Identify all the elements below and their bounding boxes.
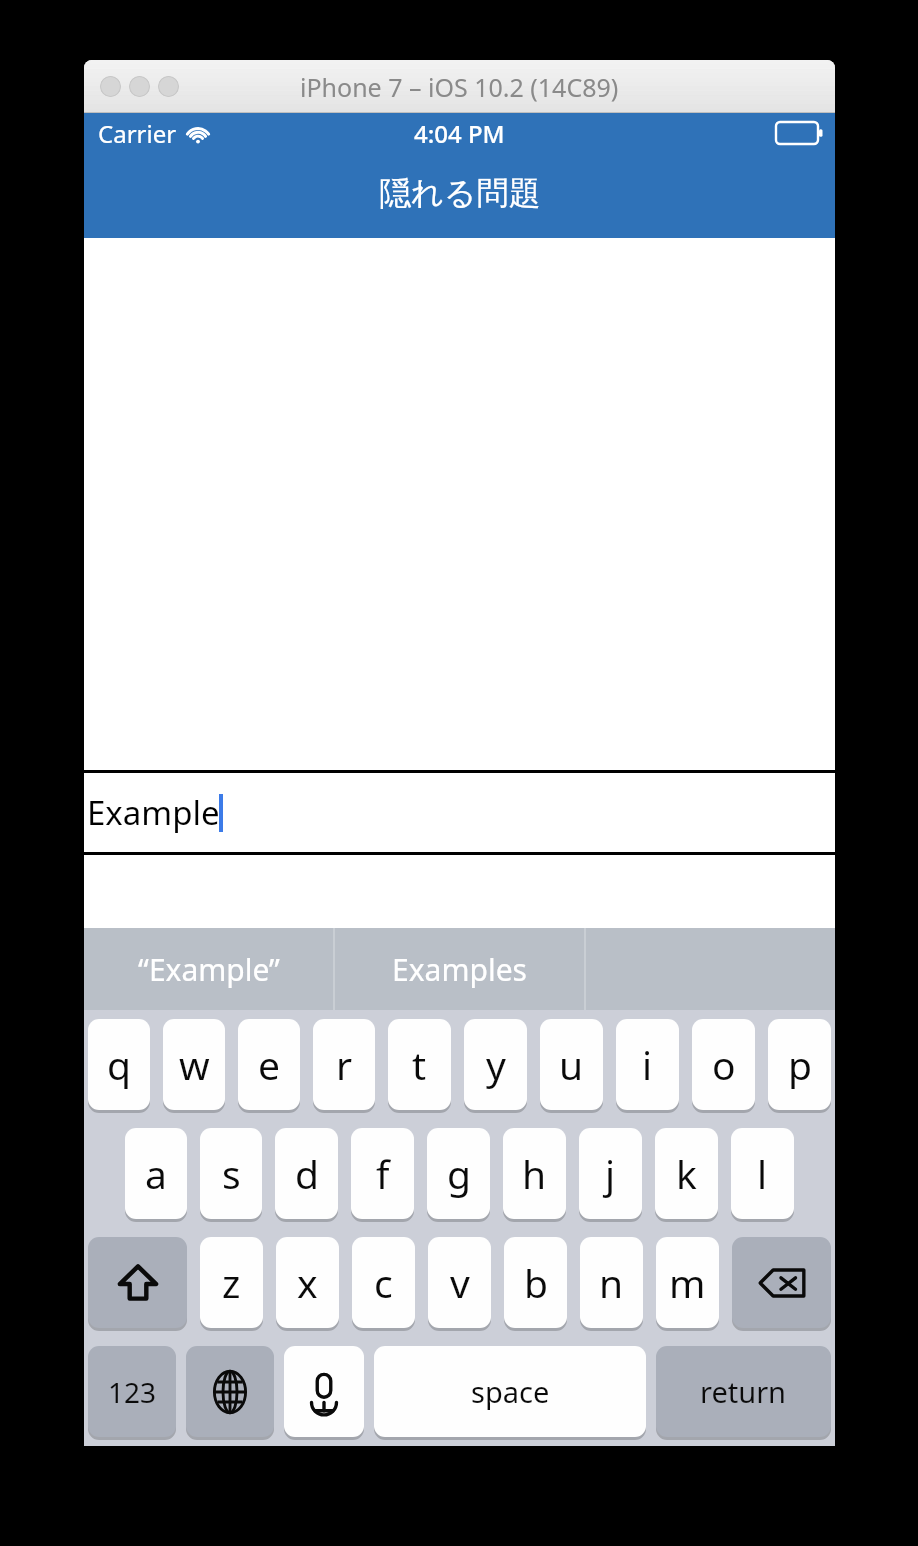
staticText: “Example”: [138, 949, 280, 990]
staticText: t: [412, 1038, 427, 1091]
staticText: 123: [108, 1373, 157, 1411]
staticText: c: [374, 1256, 393, 1309]
button[interactable]: e: [238, 1019, 300, 1110]
button[interactable]: n: [580, 1237, 643, 1328]
button[interactable]: m: [656, 1237, 719, 1328]
button[interactable]: Close window: [100, 76, 121, 97]
staticText: return: [700, 1372, 787, 1411]
staticText: space: [471, 1372, 550, 1411]
staticText: p: [788, 1038, 812, 1091]
staticText: Examples: [392, 949, 527, 990]
staticText: j: [605, 1147, 616, 1200]
staticText: iPhone 7 – iOS 10.2 (14C89): [300, 70, 619, 104]
button[interactable]: “Example”: [84, 928, 333, 1010]
button[interactable]: k: [655, 1128, 718, 1219]
other: Switch keyboard: [186, 1346, 274, 1437]
staticText: e: [258, 1038, 280, 1091]
staticText: i: [642, 1038, 653, 1091]
button[interactable]: j: [579, 1128, 642, 1219]
button[interactable]: [284, 1346, 364, 1437]
staticText: s: [222, 1147, 241, 1200]
button[interactable]: Minimize window: [129, 76, 150, 97]
button[interactable]: c: [352, 1237, 415, 1328]
button[interactable]: a: [125, 1128, 187, 1219]
other: Shift: [88, 1237, 187, 1328]
staticText: a: [145, 1147, 167, 1200]
button[interactable]: i: [616, 1019, 679, 1110]
staticText: w: [179, 1038, 210, 1091]
button[interactable]: b: [504, 1237, 567, 1328]
button[interactable]: z: [200, 1237, 263, 1328]
staticText: z: [222, 1256, 241, 1309]
button[interactable]: w: [163, 1019, 225, 1110]
button[interactable]: Zoom window: [158, 76, 179, 97]
button[interactable]: u: [540, 1019, 603, 1110]
staticText: k: [676, 1147, 697, 1200]
button[interactable]: return: [656, 1346, 831, 1437]
staticText: d: [295, 1147, 319, 1200]
button[interactable]: f: [351, 1128, 414, 1219]
staticText: q: [107, 1038, 131, 1091]
button[interactable]: t: [388, 1019, 451, 1110]
button[interactable]: g: [427, 1128, 490, 1219]
staticText: o: [712, 1038, 736, 1091]
button[interactable]: 123: [88, 1346, 176, 1437]
button[interactable]: h: [503, 1128, 566, 1219]
staticText: r: [336, 1038, 353, 1091]
button[interactable]: Example: [84, 770, 835, 855]
button[interactable]: s: [200, 1128, 262, 1219]
other: Backspace: [732, 1237, 831, 1328]
staticText: m: [669, 1256, 706, 1309]
button[interactable]: o: [692, 1019, 755, 1110]
button[interactable]: v: [428, 1237, 491, 1328]
staticText: v: [450, 1256, 470, 1309]
staticText: h: [522, 1147, 547, 1200]
other: Dictate: [284, 1346, 364, 1437]
staticText: n: [599, 1256, 624, 1309]
staticText: Carrier: [98, 117, 177, 150]
staticText: 4:04 PM: [414, 117, 505, 150]
button[interactable]: [186, 1346, 274, 1437]
button[interactable]: space: [374, 1346, 646, 1437]
button[interactable]: [88, 1237, 187, 1328]
button[interactable]: l: [731, 1128, 794, 1219]
staticText: Example: [87, 790, 220, 835]
button[interactable]: p: [768, 1019, 831, 1110]
staticText: y: [486, 1038, 506, 1091]
staticText: b: [524, 1256, 548, 1309]
staticText: u: [559, 1038, 584, 1091]
staticText: x: [297, 1256, 318, 1309]
staticText: f: [376, 1147, 390, 1200]
staticText: 隠れる問題: [379, 173, 541, 213]
staticText: g: [447, 1147, 471, 1200]
staticText: l: [757, 1147, 768, 1200]
button[interactable]: [732, 1237, 831, 1328]
button[interactable]: q: [88, 1019, 150, 1110]
button[interactable]: Examples: [335, 928, 584, 1010]
button[interactable]: d: [275, 1128, 338, 1219]
button[interactable]: r: [313, 1019, 375, 1110]
button[interactable]: y: [464, 1019, 527, 1110]
button[interactable]: x: [276, 1237, 339, 1328]
